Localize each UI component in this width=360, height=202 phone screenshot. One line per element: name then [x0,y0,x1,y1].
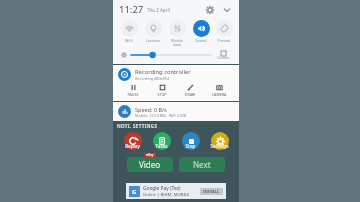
staticText: Video [139,159,161,170]
button[interactable]: CAMERA [206,83,232,97]
button[interactable]: 0 KB/s [118,105,234,118]
staticText: Settings [206,143,233,149]
button[interactable]: Settings [206,130,233,152]
staticText: Speed: 0 B/s [135,106,167,113]
button[interactable]: STOP [149,83,175,97]
button[interactable]: PAUSE [120,83,146,97]
button[interactable]: Portrait [213,19,235,44]
staticText: CAMERA [206,92,232,97]
staticText: Online | BHIM, MOBILE [143,192,190,198]
staticText: Tasks [148,143,175,149]
button[interactable]: Expand panel [220,3,233,16]
button[interactable]: Next [179,157,225,172]
staticText: G [132,188,137,196]
staticText: Custom. [215,56,232,60]
button[interactable]: DRAW [177,83,203,97]
button[interactable]: INSTALL [200,188,223,195]
staticText: NOTI. SETTINGS [117,123,158,129]
button[interactable]: G [126,183,226,199]
button[interactable]: Settings [203,3,216,16]
staticText: DRAW [177,92,203,97]
staticText: Recording controller [135,68,191,76]
staticText: PAUSE [120,92,146,97]
button[interactable]: Replay [119,130,146,152]
staticText: Next [193,159,211,170]
staticText: Mobile data [165,38,189,47]
button[interactable]: Tasks [148,130,175,152]
staticText: Replay [119,143,146,149]
staticText: Mobile: 123.9 MB WiFi 0 MB [135,113,187,118]
staticText: Stop [177,143,204,149]
staticText: 0 KB/s [122,109,128,115]
button[interactable]: Wi-Fi [117,19,141,44]
staticText: Location [141,38,165,43]
staticText: Portrait [213,38,235,43]
button[interactable]: Mobile data [165,19,189,48]
staticText: nKey [146,153,154,157]
staticText: Sound [189,38,213,43]
staticText: Google Pay (Tez) [143,185,181,192]
button[interactable]: Stop [177,130,204,152]
staticText: INSTALL [203,189,220,194]
button[interactable]: Location [141,19,165,44]
staticText: Wi-Fi [117,38,141,43]
button[interactable]: Video [127,157,173,172]
staticText: 11:27 [119,3,144,16]
staticText: Recording 480x854 [135,76,170,81]
staticText: STOP [149,92,175,97]
staticText: Thu 2 April [147,7,170,13]
button[interactable]: Sound [189,19,213,44]
button[interactable]: Customise [215,51,232,60]
